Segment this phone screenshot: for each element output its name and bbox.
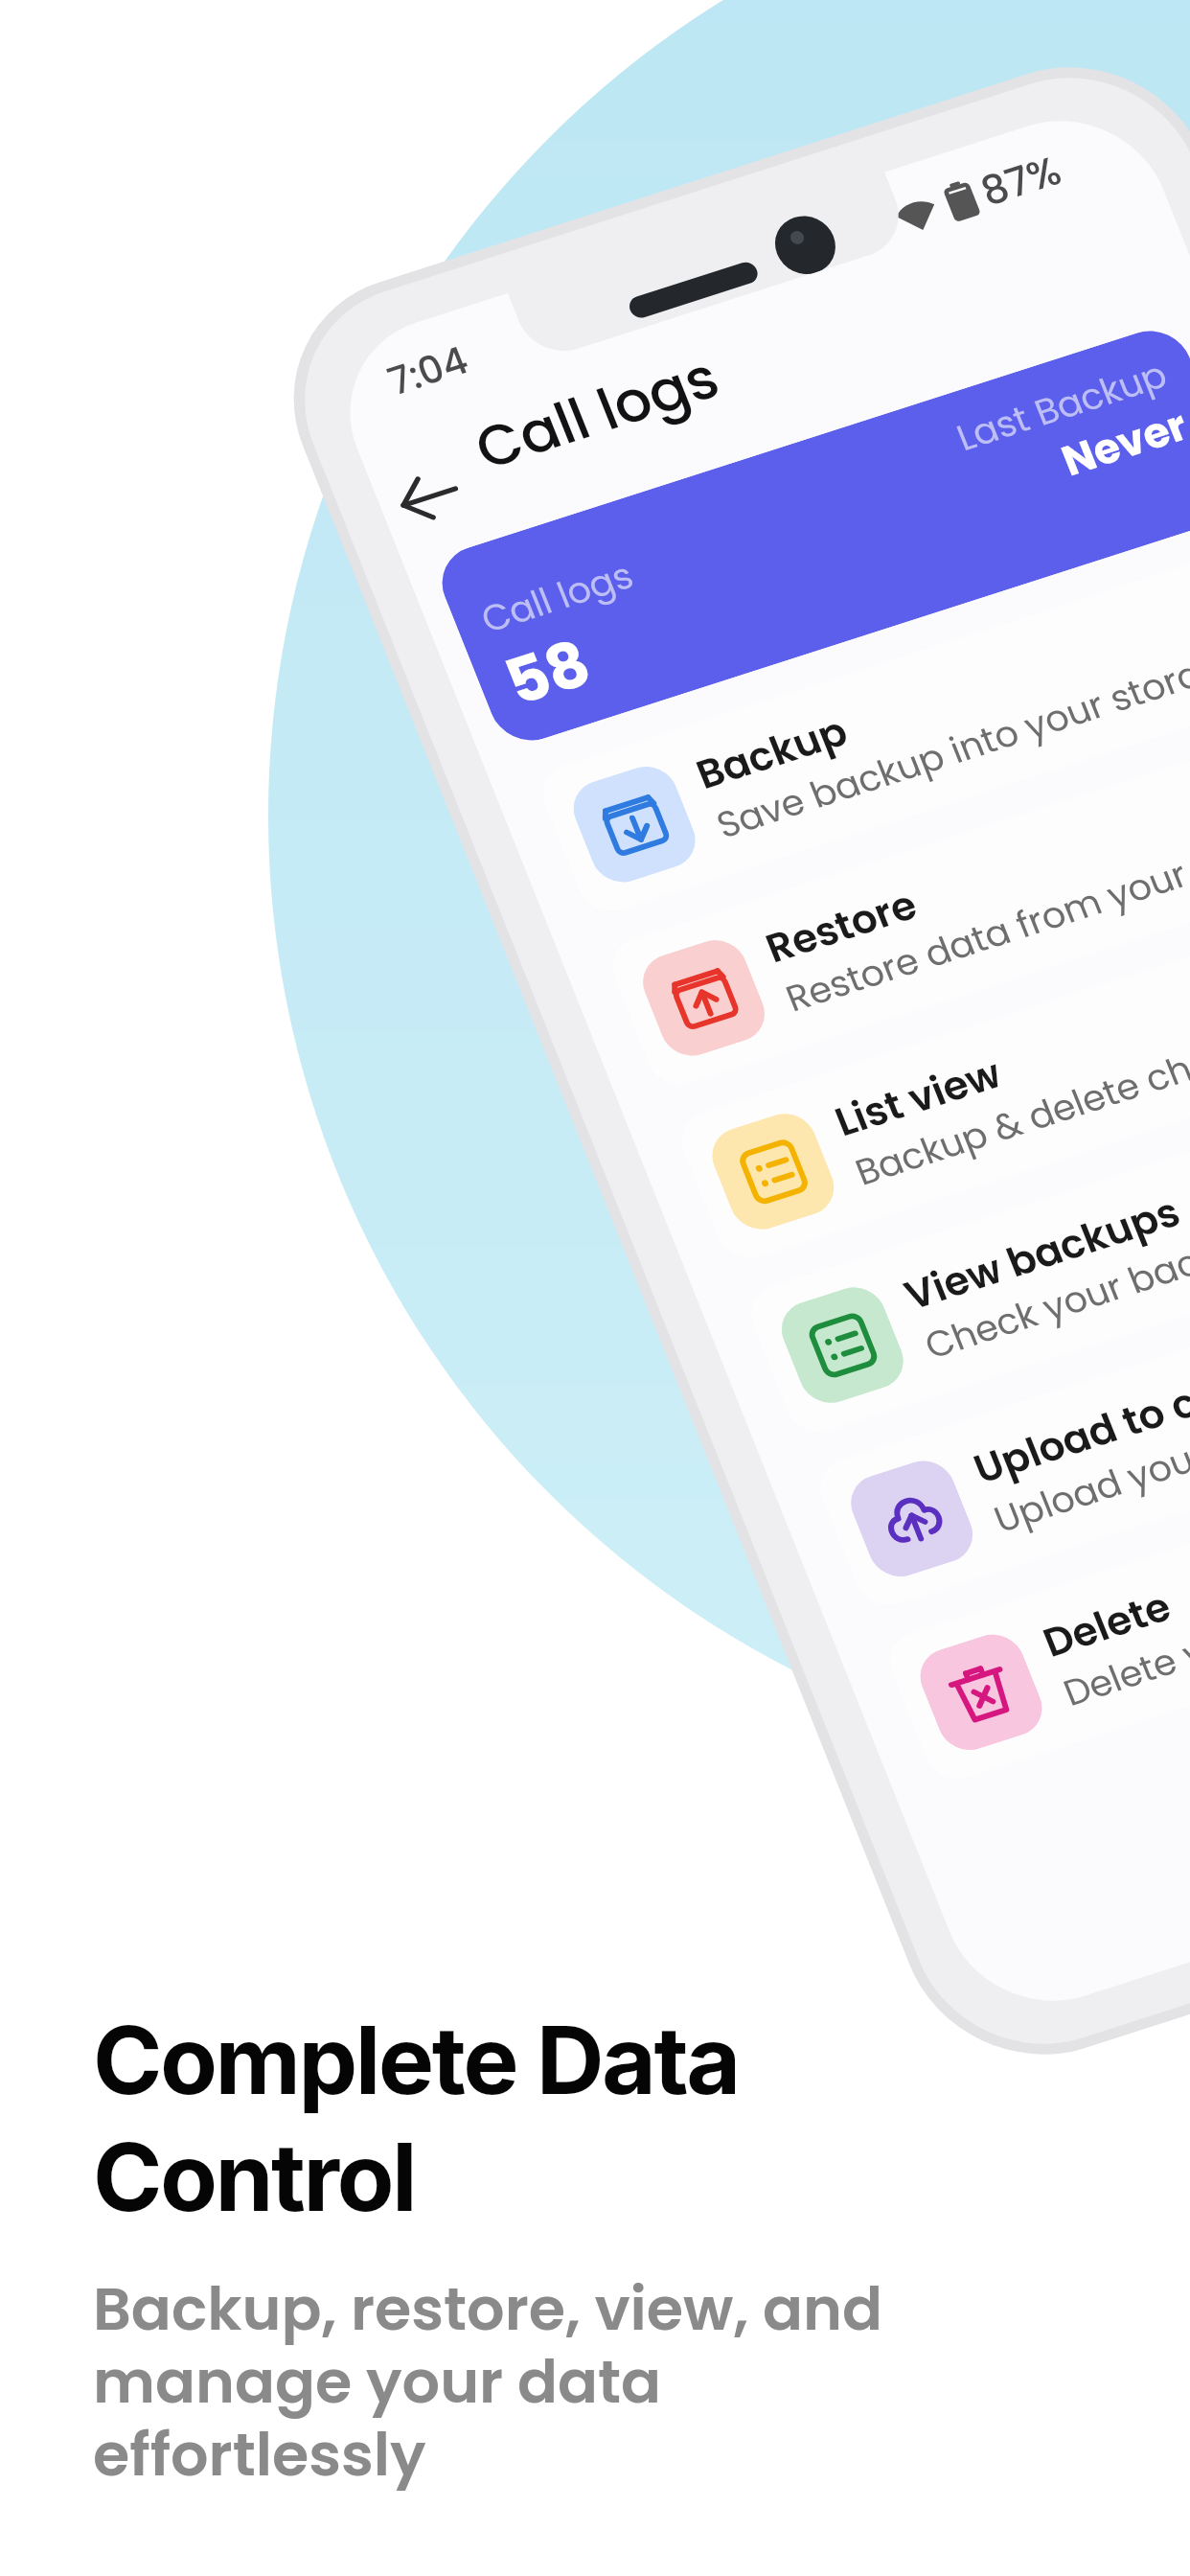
staticText: Call logs [439, 256, 755, 570]
button[interactable]: List view [625, 640, 1190, 1516]
button[interactable]: View backups [694, 813, 1190, 1689]
staticText: Restore data from your backup [763, 619, 1190, 1209]
staticText: Delete [1018, 1536, 1190, 1713]
staticText: Backup & delete choiceable [832, 829, 1190, 1363]
staticText: View backups [879, 1091, 1190, 1417]
staticText: Last Backup [934, 278, 1190, 534]
staticText: 87% [955, 116, 1087, 246]
staticText: Save backup into your storage [694, 453, 1190, 1031]
staticText: Restore [740, 826, 942, 1027]
button[interactable]: Backup [486, 293, 1190, 1169]
staticText: Complete Data Control [93, 2003, 739, 2233]
button[interactable]: Restore [556, 466, 1190, 1342]
staticText: List view [810, 990, 1027, 1206]
button[interactable]: Back [363, 432, 496, 562]
button[interactable]: Delete [833, 1161, 1190, 2037]
staticText: Upload your backup [971, 1265, 1190, 1664]
staticText: Backup [671, 653, 873, 853]
staticText: Upload to cloud [948, 1242, 1190, 1602]
staticText: Call logs [458, 498, 657, 696]
staticText: 58 [466, 593, 630, 753]
staticText: Delete your backup [1041, 1448, 1190, 1833]
staticText: Backup, restore, view, and manage your d… [93, 2267, 882, 2495]
button[interactable]: Last Backup [368, 64, 1190, 1007]
staticText: Never [1035, 354, 1190, 532]
staticText: 7:04 [364, 307, 492, 434]
staticText: Check your backup [902, 1101, 1190, 1486]
button[interactable]: Upload to cloud [764, 987, 1190, 1863]
